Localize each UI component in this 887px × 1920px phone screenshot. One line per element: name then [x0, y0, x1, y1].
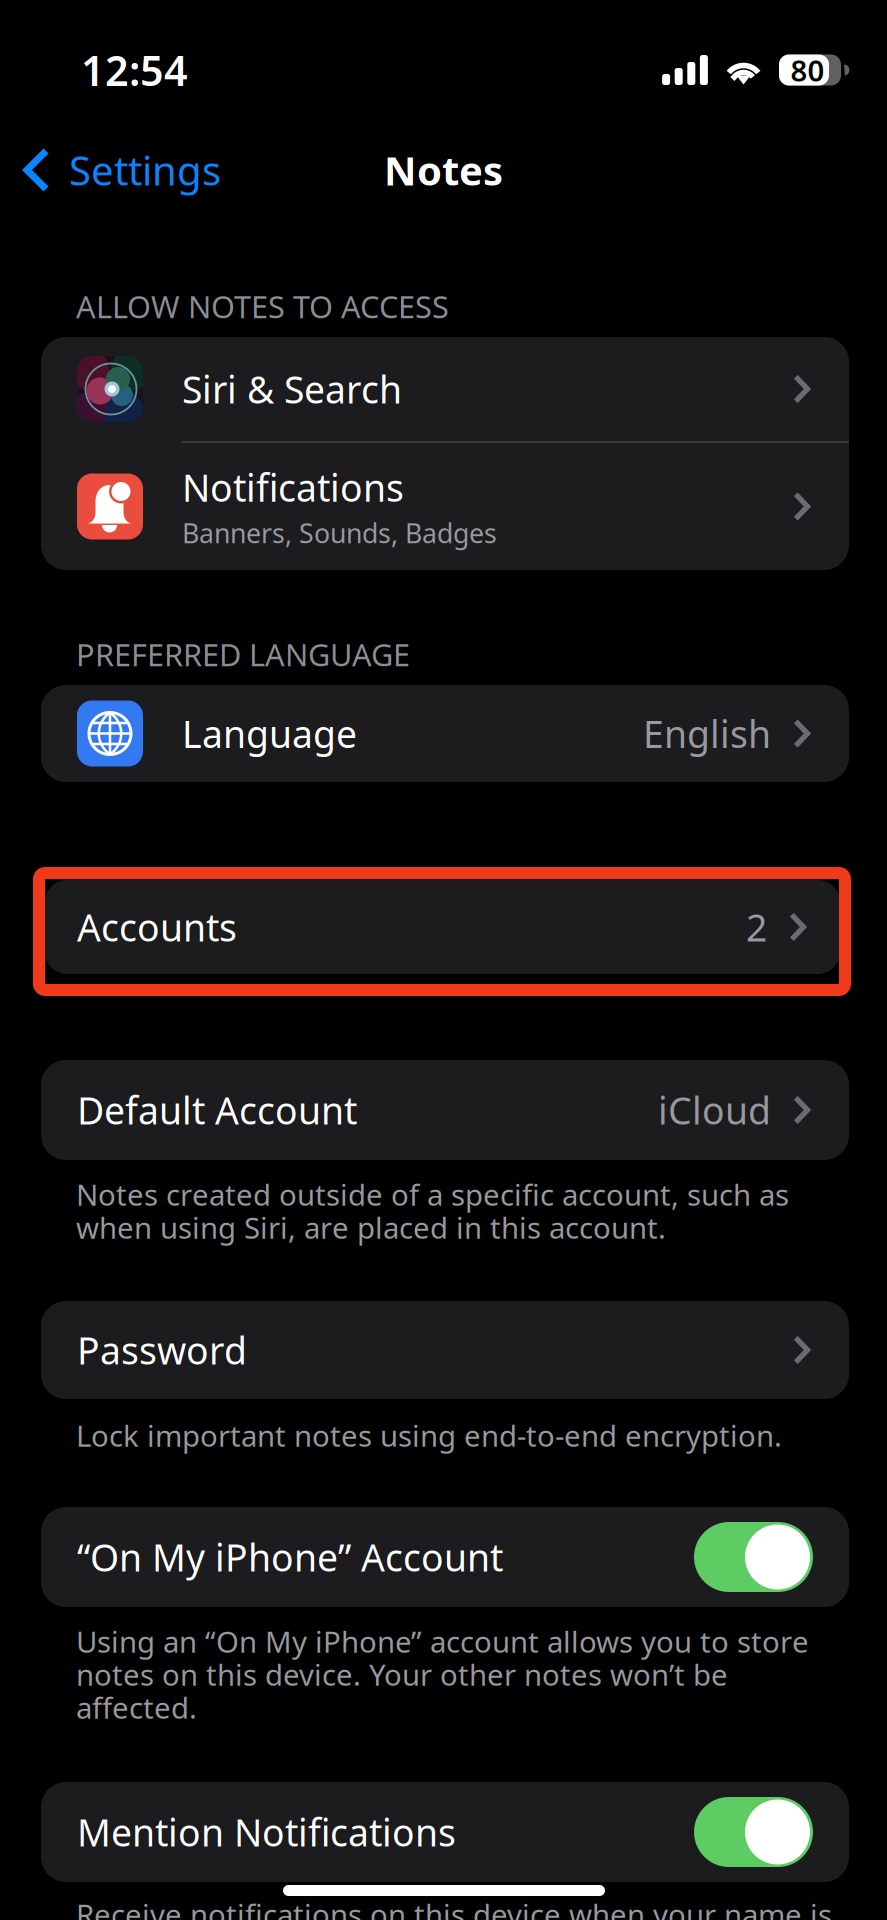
staticText: Password: [77, 1325, 247, 1375]
staticText: PREFERRED LANGUAGE: [76, 634, 410, 675]
button[interactable]: Language: [41, 685, 849, 782]
staticText: Mention Notifications: [77, 1807, 456, 1857]
staticText: Receive notifications on this device whe…: [76, 1895, 832, 1920]
staticText: “On My iPhone” Account: [77, 1532, 503, 1582]
staticText: Siri & Search: [182, 364, 402, 414]
staticText: Default Account: [77, 1085, 357, 1135]
staticText: Notes created outside of a specific acco…: [76, 1175, 789, 1247]
staticText: English: [643, 709, 771, 758]
button[interactable]: Password: [41, 1301, 849, 1399]
staticText: 2: [746, 902, 767, 952]
staticText: Lock important notes using end-to-end en…: [76, 1416, 782, 1455]
staticText: 12:54: [81, 43, 188, 97]
staticText: Notifications: [182, 462, 404, 512]
staticText: Accounts: [77, 902, 237, 952]
staticText: Settings: [69, 143, 221, 196]
button[interactable]: Notifications: [41, 443, 849, 570]
button[interactable]: Siri & Search: [41, 337, 849, 441]
button[interactable]: Settings: [0, 140, 239, 200]
button[interactable]: Accounts: [45, 880, 840, 974]
staticText: 80: [790, 50, 824, 89]
staticText: Banners, Sounds, Badges: [182, 515, 497, 550]
button[interactable]: “On My iPhone” Account: [41, 1507, 849, 1607]
staticText: iCloud: [658, 1085, 771, 1135]
staticText: Using an “On My iPhone” account allows y…: [76, 1622, 809, 1727]
button[interactable]: Default Account: [41, 1060, 849, 1160]
staticText: Notes: [384, 143, 503, 196]
staticText: Language: [182, 709, 357, 758]
button[interactable]: Mention Notifications: [41, 1782, 849, 1882]
staticText: ALLOW NOTES TO ACCESS: [76, 286, 449, 327]
